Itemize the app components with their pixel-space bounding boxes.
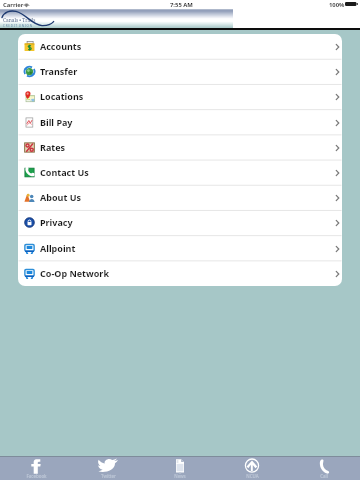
staticText: 100%: [329, 1, 345, 9]
button[interactable]: Accounts: [18, 34, 342, 59]
staticText: Bill Pay: [40, 116, 73, 128]
staticText: Twitter: [101, 473, 116, 479]
staticText: Rates: [40, 141, 66, 153]
button[interactable]: Co-Op Network: [18, 261, 342, 286]
staticText: Contact Us: [40, 166, 89, 178]
staticText: NCUA: [246, 473, 259, 479]
staticText: C R E D I T U N I O N: [3, 24, 32, 28]
staticText: About Us: [40, 191, 81, 203]
button[interactable]: Bill Pay: [18, 110, 342, 135]
staticText: 7:55 AM: [170, 1, 193, 9]
button[interactable]: About Us: [18, 185, 342, 210]
button[interactable]: Twitter: [72, 457, 144, 480]
staticText: Call: [320, 473, 328, 479]
button[interactable]: Facebook: [0, 457, 72, 480]
staticText: Accounts: [40, 40, 82, 52]
button[interactable]: NCUA: [216, 457, 288, 480]
staticText: Transfer: [40, 65, 78, 77]
staticText: Allpoint: [40, 242, 76, 254]
button[interactable]: Locations: [18, 84, 342, 109]
button[interactable]: Call: [288, 457, 360, 480]
staticText: Co-Op Network: [40, 267, 109, 279]
button[interactable]: Rates: [18, 135, 342, 160]
staticText: News: [174, 473, 186, 479]
button[interactable]: Privacy: [18, 210, 342, 235]
staticText: Facebook: [26, 473, 47, 479]
staticText: Privacy: [40, 216, 73, 228]
staticText: Locations: [40, 90, 84, 102]
button[interactable]: News: [144, 457, 216, 480]
button[interactable]: Allpoint: [18, 236, 342, 261]
button[interactable]: Transfer: [18, 59, 342, 84]
staticText: Canals • Trails: [3, 17, 36, 24]
staticText: Carrier: [3, 1, 24, 9]
button[interactable]: Contact Us: [18, 160, 342, 185]
